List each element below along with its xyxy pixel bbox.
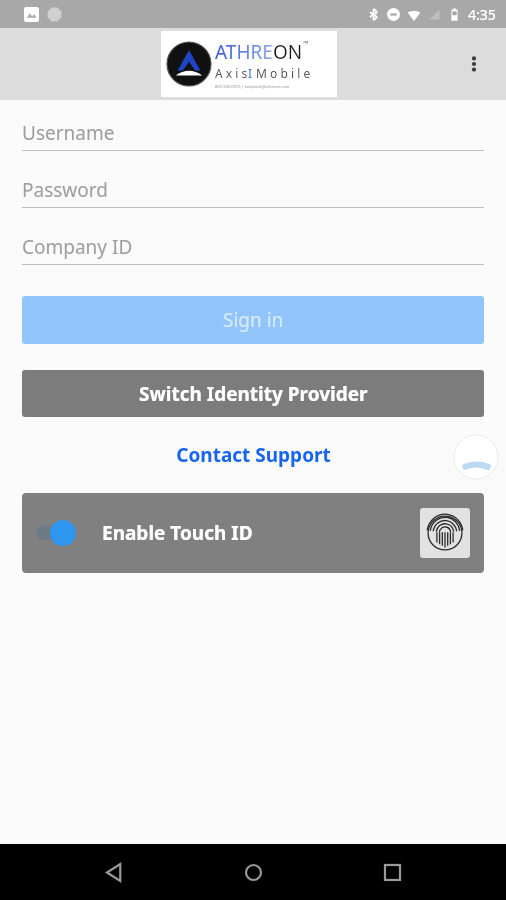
staticText: Company ID xyxy=(22,234,133,260)
staticText: M o b i l e xyxy=(253,65,311,81)
button[interactable]: Sign in xyxy=(22,296,484,344)
staticText: A x i s xyxy=(215,65,248,81)
staticText: Contact Support xyxy=(176,442,331,468)
staticText: ATHRE xyxy=(215,39,273,65)
staticText: Switch Identity Provider xyxy=(139,381,368,407)
button[interactable]: Enable Touch ID xyxy=(22,493,484,573)
staticText: Enable Touch ID xyxy=(102,520,253,546)
staticText: ON xyxy=(273,39,303,65)
button[interactable]: Company ID xyxy=(22,230,484,265)
button[interactable]: Recent apps xyxy=(368,848,416,896)
button[interactable]: More options xyxy=(452,42,496,86)
staticText: 4:35 xyxy=(468,5,496,24)
button[interactable]: Back xyxy=(91,848,139,896)
staticText: ™ xyxy=(303,39,309,49)
staticText: Password xyxy=(22,177,108,203)
button[interactable]: Username xyxy=(22,116,484,151)
button[interactable]: Fingerprint xyxy=(420,508,470,558)
button[interactable]: Switch Identity Provider xyxy=(22,370,484,417)
staticText: Username xyxy=(22,120,115,146)
button[interactable]: Contact Support xyxy=(168,438,339,472)
staticText: 800-935-0973 | helpdesk@athreon.com xyxy=(215,84,290,89)
staticText: Sign in xyxy=(223,307,284,333)
staticText: I xyxy=(248,65,253,81)
button[interactable]: Password xyxy=(22,173,484,208)
button[interactable]: Home xyxy=(229,848,277,896)
